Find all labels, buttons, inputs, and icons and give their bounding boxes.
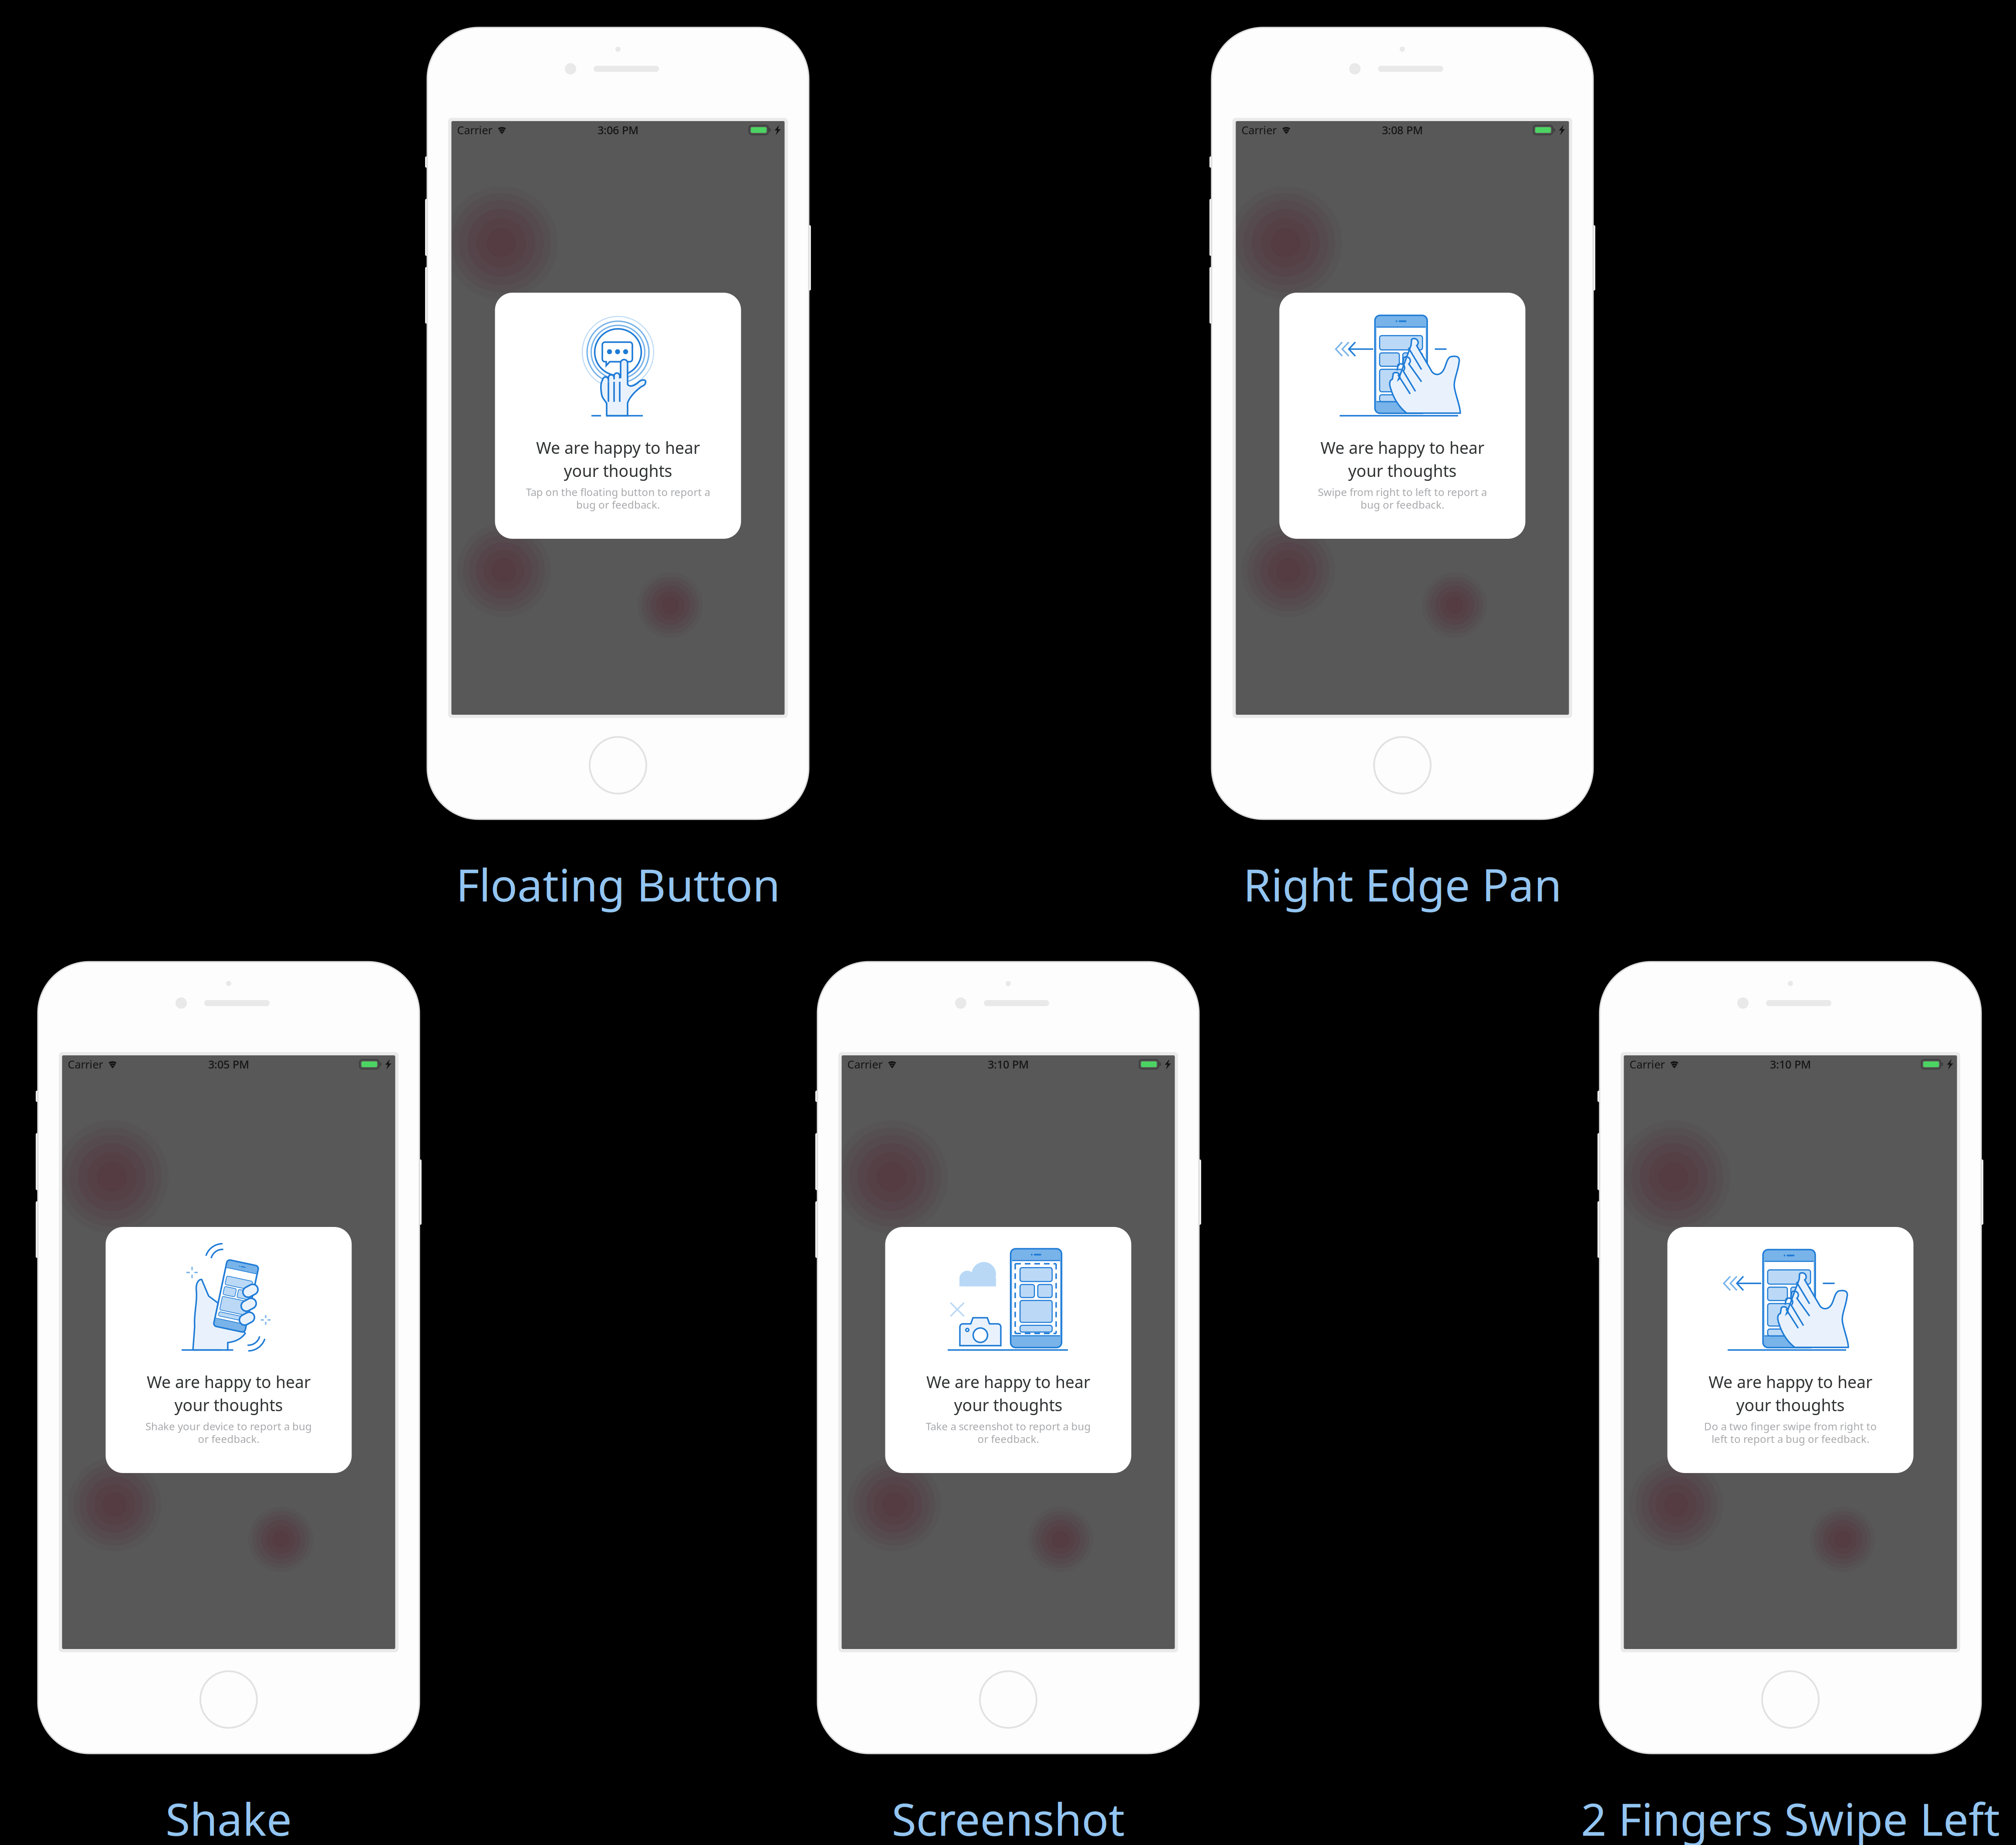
staticText: your thoughts	[564, 460, 672, 481]
button[interactable]: Shake	[165, 1789, 292, 1845]
staticText: Tap on the floating button to report a	[526, 485, 710, 499]
staticText: your thoughts	[174, 1394, 283, 1416]
staticText: Carrier	[1241, 123, 1277, 137]
button[interactable]: 2 Fingers Swipe Left	[1581, 1789, 2000, 1845]
staticText: We are happy to hear	[147, 1371, 311, 1393]
staticText: Shake your device to report a bug	[145, 1419, 312, 1433]
staticText: Carrier	[1629, 1057, 1665, 1072]
staticText: 2 Fingers Swipe Left	[1581, 1789, 2000, 1845]
staticText: Screenshot	[892, 1789, 1125, 1845]
staticText: Carrier	[68, 1057, 103, 1072]
staticText: We are happy to hear	[926, 1371, 1090, 1393]
staticText: Right Edge Pan	[1243, 854, 1562, 914]
button[interactable]: Right Edge Pan	[1243, 854, 1562, 914]
staticText: or feedback.	[978, 1432, 1039, 1446]
staticText: bug or feedback.	[576, 498, 660, 512]
staticText: 3:10 PM	[1770, 1057, 1811, 1072]
button[interactable]: Screenshot	[892, 1789, 1125, 1845]
staticText: 3:06 PM	[598, 123, 638, 137]
staticText: Carrier	[847, 1057, 883, 1072]
staticText: bug or feedback.	[1361, 498, 1444, 512]
button[interactable]: Floating Button	[456, 854, 780, 914]
staticText: 3:05 PM	[208, 1057, 249, 1072]
staticText: or feedback.	[198, 1432, 259, 1446]
staticText: Shake	[165, 1789, 292, 1845]
staticText: your thoughts	[1348, 460, 1457, 481]
staticText: your thoughts	[1736, 1394, 1845, 1416]
staticText: left to report a bug or feedback.	[1712, 1432, 1869, 1446]
staticText: Do a two finger swipe from right to	[1704, 1419, 1877, 1433]
staticText: We are happy to hear	[1320, 437, 1484, 458]
staticText: Carrier	[457, 123, 492, 137]
staticText: Floating Button	[456, 854, 780, 914]
staticText: We are happy to hear	[1709, 1371, 1872, 1393]
staticText: 3:10 PM	[988, 1057, 1029, 1072]
staticText: 3:08 PM	[1382, 123, 1423, 137]
staticText: Swipe from right to left to report a	[1318, 485, 1487, 499]
staticText: your thoughts	[954, 1394, 1062, 1416]
staticText: Take a screenshot to report a bug	[926, 1419, 1091, 1433]
staticText: We are happy to hear	[536, 437, 700, 458]
